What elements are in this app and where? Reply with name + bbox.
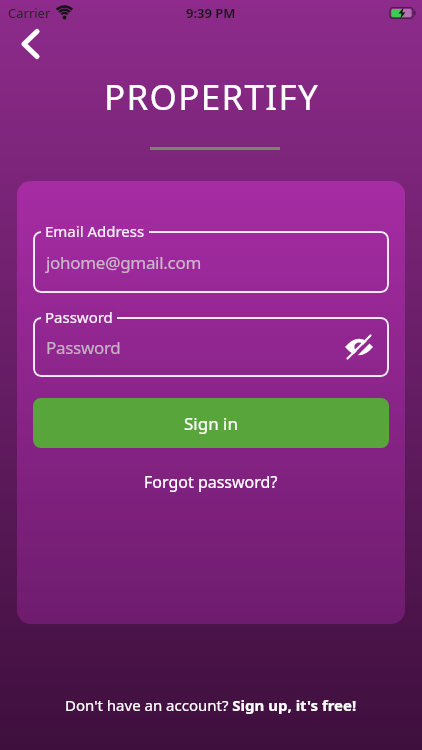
button[interactable] (10, 24, 54, 68)
button[interactable]: Forgot password? (144, 471, 278, 493)
staticText: Don't have an account? Sign up, it's fre… (65, 695, 357, 715)
staticText: Forgot password? (144, 471, 278, 493)
staticText: 9:39 PM (186, 4, 236, 22)
staticText: PROPERTIFY (104, 73, 319, 121)
button[interactable]: Password (33, 317, 389, 377)
button[interactable]: Don't have an account? Sign up, it's fre… (65, 695, 357, 715)
staticText: Password (46, 336, 121, 359)
button[interactable]: johome@gmail.com (33, 231, 389, 293)
staticText: Carrier (8, 4, 51, 22)
staticText: Sign in (184, 412, 238, 435)
button[interactable]: Sign in (33, 398, 389, 448)
staticText: johome@gmail.com (46, 251, 201, 274)
staticText: Email Address (45, 221, 145, 241)
button[interactable] (343, 331, 375, 363)
staticText: Password (45, 307, 113, 327)
